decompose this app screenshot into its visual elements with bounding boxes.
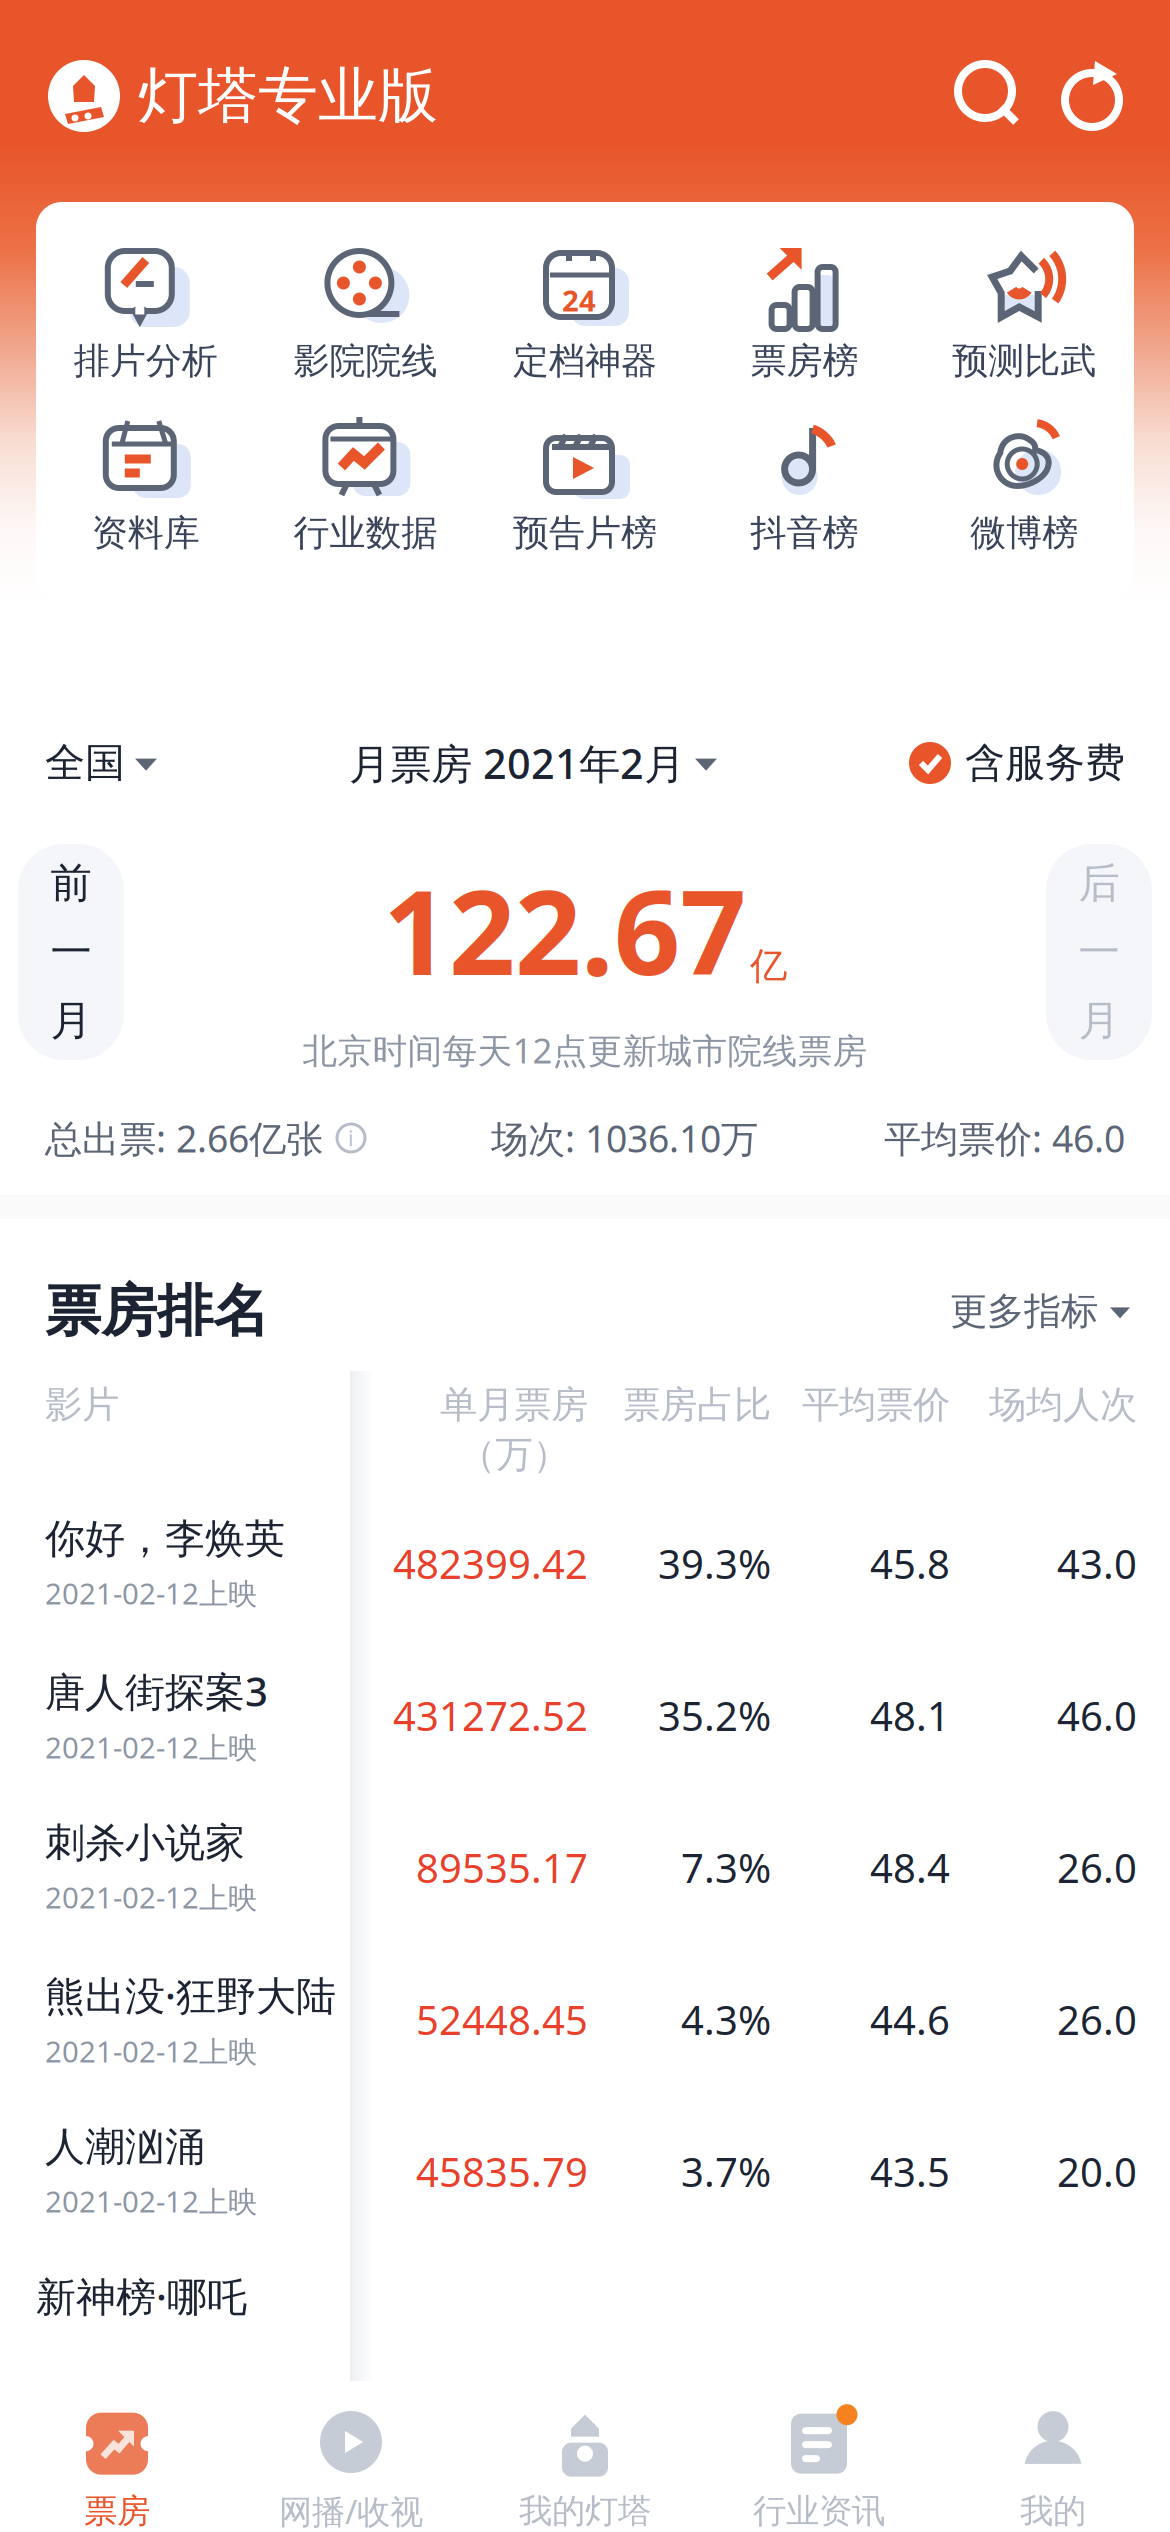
button[interactable]: 熊出没·狂野大陆 bbox=[9, 1943, 1161, 2095]
staticText: 4.3% bbox=[681, 1993, 771, 2046]
button[interactable]: 24 bbox=[475, 245, 695, 383]
staticText: 35.2% bbox=[658, 1689, 771, 1742]
staticText: 122.67 bbox=[383, 853, 746, 1007]
staticText: 24 bbox=[562, 280, 596, 319]
button[interactable]: 微博榜 bbox=[914, 417, 1134, 555]
staticText: 排片分析 bbox=[74, 339, 218, 383]
button[interactable]: 票房榜 bbox=[695, 245, 914, 383]
staticText: 39.3% bbox=[658, 1537, 771, 1590]
staticText: 定档神器 bbox=[513, 339, 657, 383]
staticText: 灯塔专业版 bbox=[138, 59, 438, 133]
staticText: 20.0 bbox=[1057, 2145, 1137, 2198]
staticText: 26.0 bbox=[1057, 1993, 1137, 2046]
staticText: 预告片榜 bbox=[513, 511, 657, 555]
staticText: 总出票: 2.66亿张 bbox=[45, 1113, 323, 1163]
staticText: 52448.45 bbox=[416, 1993, 588, 2046]
staticText: 含服务费 bbox=[965, 738, 1125, 787]
staticText: 影院院线 bbox=[293, 339, 437, 383]
staticText: 44.6 bbox=[870, 1993, 950, 2046]
button[interactable]: 你好，李焕英 bbox=[9, 1487, 1161, 1639]
staticText: 43.5 bbox=[870, 2145, 950, 2198]
button[interactable]: 预测比武 bbox=[914, 245, 1134, 383]
staticText: 平均票价: 46.0 bbox=[884, 1113, 1125, 1163]
button[interactable]: 月票房 2021年2月 bbox=[349, 736, 717, 790]
staticText: 月 bbox=[50, 995, 91, 1046]
button[interactable]: Previous month bbox=[0, 844, 124, 1060]
staticText: i bbox=[348, 1124, 354, 1152]
staticText: 43.0 bbox=[1057, 1537, 1137, 1590]
staticText: 2021-02-12上映 bbox=[45, 1574, 257, 1613]
staticText: 我的灯塔 bbox=[519, 2491, 651, 2532]
staticText: 平均票价 bbox=[802, 1382, 950, 1428]
button[interactable]: 行业资讯 bbox=[702, 2405, 936, 2532]
button[interactable]: 排片分析 bbox=[36, 245, 256, 383]
button[interactable]: 我的 bbox=[936, 2405, 1170, 2532]
button[interactable]: 抖音榜 bbox=[695, 417, 914, 555]
staticText: 月 bbox=[1078, 995, 1119, 1046]
staticText: 人潮汹涌 bbox=[45, 2122, 205, 2172]
staticText: 预测比武 bbox=[952, 339, 1096, 383]
button[interactable]: 人潮汹涌 bbox=[9, 2095, 1161, 2247]
button[interactable]: 网播/收视 bbox=[234, 2403, 468, 2532]
staticText: 2021-02-12上映 bbox=[45, 2182, 257, 2221]
button[interactable]: 更多指标 bbox=[950, 1288, 1130, 1334]
staticText: 431272.52 bbox=[393, 1689, 588, 1742]
staticText: 场均人次 bbox=[989, 1382, 1137, 1428]
button[interactable]: 资料库 bbox=[36, 417, 256, 555]
staticText: 7.3% bbox=[681, 1841, 771, 1894]
staticText: 一 bbox=[50, 927, 91, 977]
staticText: 月票房 2021年2月 bbox=[349, 736, 685, 790]
staticText: 46.0 bbox=[1057, 1689, 1137, 1742]
staticText: 48.4 bbox=[870, 1841, 950, 1894]
staticText: 2021-02-12上映 bbox=[45, 2032, 257, 2071]
button[interactable]: 全国 bbox=[45, 738, 157, 787]
staticText: （万） bbox=[458, 1432, 569, 1477]
staticText: 一 bbox=[1078, 927, 1119, 977]
staticText: 你好，李焕英 bbox=[45, 1514, 285, 1564]
button[interactable]: 唐人街探案3 bbox=[9, 1639, 1161, 1791]
staticText: 48.1 bbox=[870, 1689, 950, 1742]
staticText: 唐人街探案3 bbox=[45, 1664, 268, 1718]
staticText: 票房排名 bbox=[45, 1277, 269, 1346]
staticText: 抖音榜 bbox=[751, 511, 859, 555]
staticText: 我的 bbox=[1020, 2491, 1086, 2532]
button[interactable]: 含服务费 bbox=[909, 738, 1125, 787]
staticText: 后 bbox=[1078, 858, 1119, 909]
button[interactable]: 影院院线 bbox=[256, 245, 475, 383]
staticText: 影片 bbox=[45, 1382, 119, 1428]
staticText: 89535.17 bbox=[416, 1841, 588, 1894]
staticText: 482399.42 bbox=[393, 1537, 588, 1590]
staticText: 新神榜·哪吒 bbox=[36, 2269, 247, 2323]
staticText: 单月票房 bbox=[440, 1382, 588, 1428]
button[interactable]: 票房 bbox=[0, 2405, 234, 2532]
staticText: 全国 bbox=[45, 738, 125, 787]
staticText: 前 bbox=[50, 858, 91, 909]
staticText: 票房占比 bbox=[623, 1382, 771, 1428]
staticText: 熊出没·狂野大陆 bbox=[45, 1968, 336, 2022]
staticText: 亿 bbox=[750, 943, 787, 989]
staticText: 45.8 bbox=[870, 1537, 950, 1590]
staticText: 微博榜 bbox=[970, 511, 1078, 555]
staticText: 45835.79 bbox=[416, 2145, 588, 2198]
button[interactable]: 行业数据 bbox=[256, 417, 475, 555]
staticText: 票房 bbox=[84, 2491, 150, 2532]
staticText: 2021-02-12上映 bbox=[45, 1878, 257, 1917]
staticText: 场次: 1036.10万 bbox=[491, 1113, 758, 1163]
button[interactable]: 预告片榜 bbox=[475, 417, 695, 555]
button[interactable]: Search bbox=[946, 52, 1034, 140]
staticText: 2021-02-12上映 bbox=[45, 1728, 257, 1767]
button[interactable]: Next month bbox=[1046, 844, 1170, 1060]
staticText: 刺杀小说家 bbox=[45, 1818, 245, 1868]
staticText: 行业资讯 bbox=[753, 2491, 885, 2532]
staticText: 26.0 bbox=[1057, 1841, 1137, 1894]
staticText: 更多指标 bbox=[950, 1288, 1098, 1334]
button[interactable]: 刺杀小说家 bbox=[9, 1791, 1161, 1943]
staticText: 北京时间每天12点更新城市院线票房 bbox=[302, 1027, 867, 1073]
staticText: 资料库 bbox=[92, 511, 200, 555]
button[interactable]: Share bbox=[1048, 52, 1136, 140]
staticText: 票房榜 bbox=[751, 339, 859, 383]
staticText: 3.7% bbox=[681, 2145, 771, 2198]
staticText: 网播/收视 bbox=[279, 2489, 423, 2532]
button[interactable]: 我的灯塔 bbox=[468, 2405, 702, 2532]
staticText: 行业数据 bbox=[293, 511, 437, 555]
